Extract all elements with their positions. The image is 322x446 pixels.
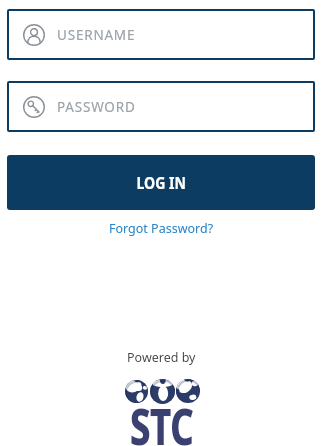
- staticText: USERNAME: [57, 26, 136, 44]
- button[interactable]: USERNAME: [7, 9, 315, 60]
- button[interactable]: Forgot Password?: [109, 220, 214, 237]
- button[interactable]: LOG IN: [7, 155, 315, 210]
- staticText: STC: [130, 392, 193, 446]
- staticText: LOG IN: [136, 172, 187, 194]
- button[interactable]: PASSWORD: [7, 81, 315, 132]
- staticText: PASSWORD: [57, 98, 136, 116]
- staticText: Powered by: [127, 349, 196, 366]
